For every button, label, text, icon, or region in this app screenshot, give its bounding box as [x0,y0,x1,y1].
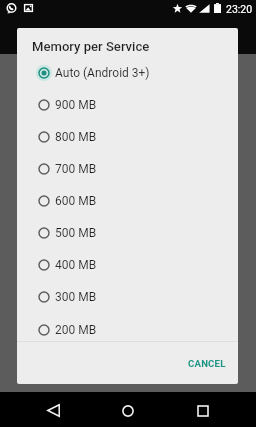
button[interactable]: 200 MB [17,314,238,346]
staticText: Memory per Service [32,39,150,54]
staticText: 900 MB [55,98,97,112]
button[interactable]: CANCEL [179,350,235,377]
staticText: 200 MB [55,323,97,337]
button[interactable]: 900 MB [17,89,238,121]
staticText: 800 MB [55,130,97,144]
button[interactable]: Recent apps [177,392,228,427]
button[interactable]: Back [28,392,78,427]
staticText: Auto (Android 3+) [55,66,150,80]
button[interactable]: 400 MB [17,249,238,281]
button[interactable]: Auto (Android 3+) [17,57,238,89]
button[interactable]: 600 MB [17,185,238,217]
button[interactable]: 500 MB [17,217,238,249]
button[interactable]: 800 MB [17,121,238,153]
staticText: 600 MB [55,194,97,208]
staticText: 700 MB [55,162,97,176]
staticText: 400 MB [55,258,97,272]
staticText: 500 MB [55,226,97,240]
staticText: 23:20 [226,3,253,15]
staticText: 300 MB [55,290,97,304]
button[interactable]: 700 MB [17,153,238,185]
button[interactable]: 300 MB [17,281,238,313]
staticText: CANCEL [188,358,226,369]
button[interactable]: Home [102,392,153,427]
